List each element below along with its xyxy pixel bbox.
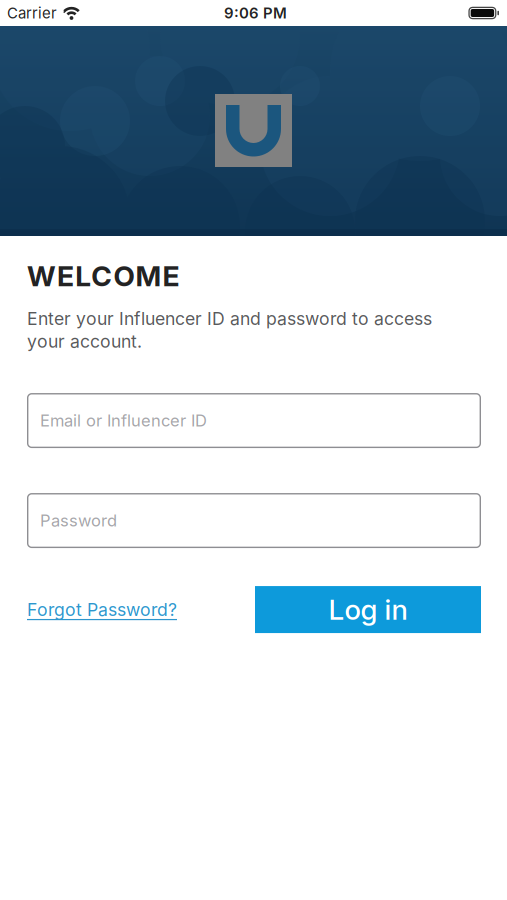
staticText: Carrier bbox=[7, 4, 57, 22]
staticText: 9:06 PM bbox=[224, 4, 287, 22]
staticText: WELCOME bbox=[27, 259, 180, 293]
button[interactable]: Forgot Password? bbox=[27, 599, 177, 620]
staticText: Log in bbox=[328, 593, 407, 626]
staticText: Forgot Password? bbox=[27, 599, 177, 620]
button[interactable]: Password bbox=[27, 493, 481, 548]
button[interactable]: Email or Influencer ID bbox=[27, 393, 481, 448]
staticText: Password bbox=[40, 511, 117, 531]
button[interactable]: Log in bbox=[255, 586, 481, 633]
staticText: Email or Influencer ID bbox=[40, 411, 207, 431]
staticText: Enter your Influencer ID and password to… bbox=[27, 308, 432, 352]
